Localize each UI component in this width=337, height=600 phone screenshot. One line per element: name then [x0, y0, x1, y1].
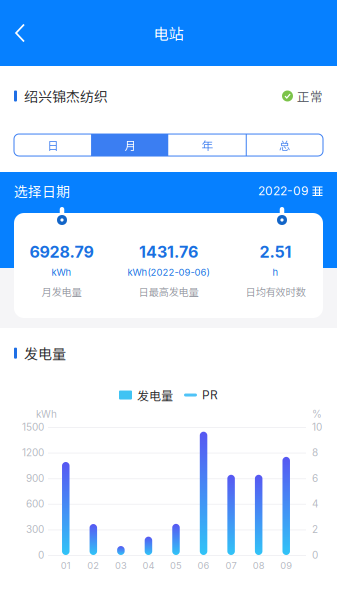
staticText: 发电量 — [24, 343, 66, 363]
staticText: 0 — [38, 549, 44, 561]
staticText: 2022-09 — [258, 184, 308, 198]
staticText: 06 — [198, 560, 210, 571]
staticText: kWh — [36, 408, 57, 420]
staticText: PR — [202, 388, 218, 402]
staticText: kWh(2022-09-06) — [127, 266, 209, 278]
staticText: 年 — [202, 137, 213, 153]
staticText: 1431.76 — [139, 242, 198, 262]
button[interactable]: Back — [0, 13, 39, 52]
staticText: 02 — [87, 560, 99, 571]
staticText: 总 — [279, 137, 290, 153]
staticText: 08 — [253, 560, 265, 571]
staticText: 8 — [312, 447, 318, 459]
staticText: 绍兴锦杰纺织 — [24, 86, 108, 106]
button[interactable]: 年 — [168, 134, 246, 156]
staticText: 月发电量 — [41, 284, 81, 299]
staticText: 4 — [312, 498, 318, 510]
staticText: 09 — [280, 560, 292, 571]
staticText: 选择日期 — [14, 181, 70, 201]
button[interactable]: 日 — [14, 134, 91, 156]
staticText: 6928.79 — [29, 242, 93, 262]
staticText: 300 — [26, 523, 44, 535]
staticText: 月 — [124, 137, 135, 153]
staticText: kWh — [51, 266, 71, 278]
staticText: 600 — [26, 498, 44, 510]
button[interactable]: 选择日期 — [14, 178, 323, 204]
staticText: 正常 — [297, 87, 323, 105]
button[interactable]: 月 — [91, 134, 168, 156]
staticText: 900 — [26, 472, 44, 484]
staticText: 01 — [61, 560, 71, 571]
staticText: 07 — [226, 560, 237, 571]
staticText: 电站 — [153, 22, 183, 44]
staticText: 2 — [312, 523, 318, 535]
staticText: 1200 — [22, 447, 44, 459]
staticText: h — [272, 266, 278, 278]
staticText: 0 — [312, 549, 318, 561]
staticText: 03 — [115, 560, 127, 571]
staticText: 发电量 — [137, 386, 173, 404]
staticText: 05 — [170, 560, 182, 571]
staticText: 日均有效时数 — [245, 284, 305, 299]
staticText: % — [312, 408, 322, 420]
staticText: 6 — [312, 472, 318, 484]
staticText: 10 — [312, 421, 322, 433]
button[interactable]: 总 — [246, 134, 323, 156]
staticText: 04 — [142, 560, 154, 571]
staticText: 日 — [47, 137, 58, 153]
staticText: 日最高发电量 — [138, 284, 198, 299]
staticText: 2.51 — [259, 242, 291, 262]
staticText: 1500 — [22, 421, 44, 433]
